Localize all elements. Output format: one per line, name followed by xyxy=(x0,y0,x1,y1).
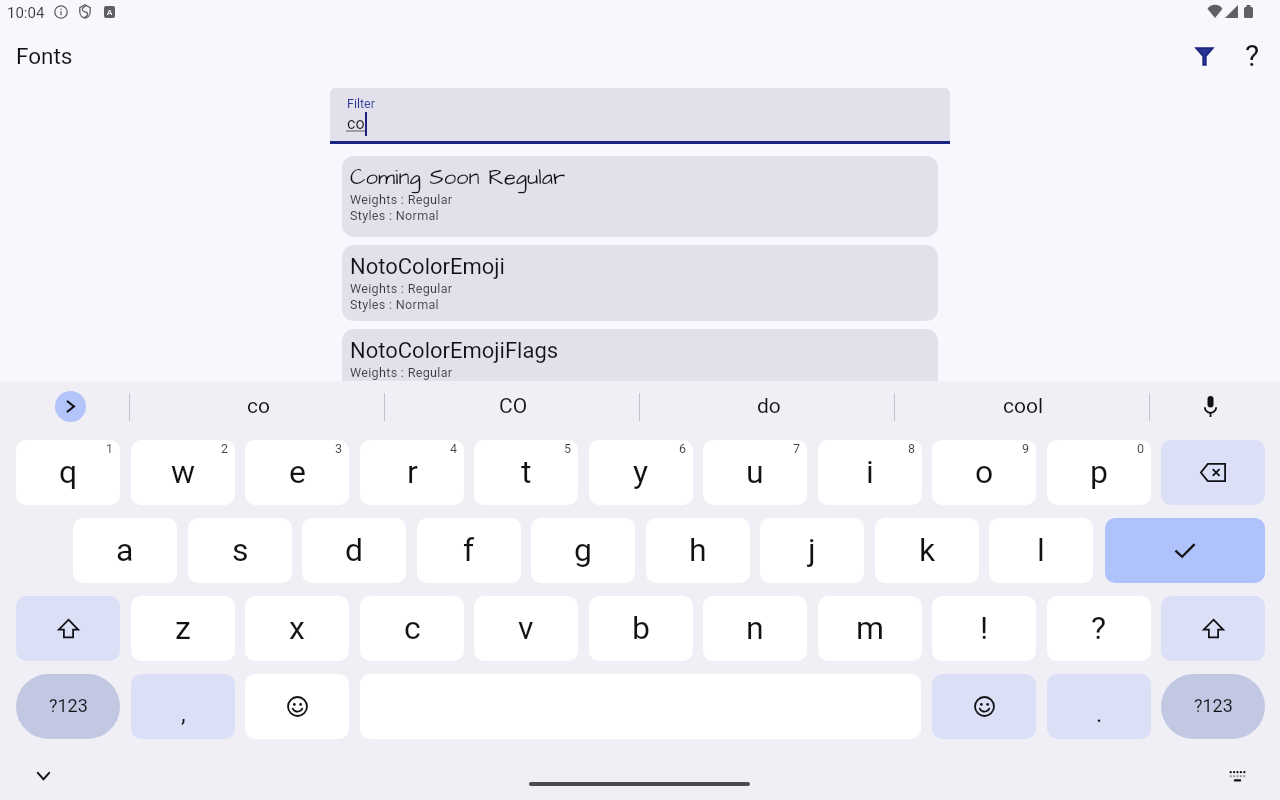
staticText: NotoColorEmoji xyxy=(350,254,505,280)
staticText: co xyxy=(347,114,365,133)
button[interactable]: Filter xyxy=(330,88,950,144)
button[interactable]: Coming Soon Regular xyxy=(342,156,938,237)
staticText: x xyxy=(289,609,305,647)
button[interactable]: o xyxy=(932,440,1036,505)
button[interactable]: g xyxy=(531,518,635,583)
button[interactable]: NotoColorEmoji xyxy=(342,245,938,321)
button[interactable]: do xyxy=(641,381,896,432)
other: Shift xyxy=(58,618,79,639)
button[interactable]: ? xyxy=(1047,596,1151,661)
staticText: NotoColorEmojiFlags xyxy=(350,338,559,364)
staticText: m xyxy=(856,609,885,647)
staticText: b xyxy=(632,609,650,647)
staticText: , xyxy=(181,700,186,728)
button[interactable]: l xyxy=(989,518,1093,583)
staticText: cool xyxy=(1003,394,1044,419)
button[interactable]: q xyxy=(16,440,120,505)
button[interactable]: ?123 xyxy=(1161,674,1265,739)
staticText: c xyxy=(404,609,421,647)
button[interactable]: Emoji xyxy=(932,674,1036,739)
button[interactable]: b xyxy=(589,596,693,661)
button[interactable]: Backspace xyxy=(1161,440,1265,505)
staticText: w xyxy=(171,453,196,491)
staticText: p xyxy=(1090,453,1108,491)
staticText: 9 xyxy=(1022,441,1030,456)
staticText: do xyxy=(757,394,781,419)
button[interactable]: i xyxy=(818,440,922,505)
staticText: ?123 xyxy=(49,695,88,716)
staticText: ! xyxy=(980,609,989,647)
button[interactable]: h xyxy=(646,518,750,583)
staticText: Fonts xyxy=(16,43,73,69)
button[interactable]: t xyxy=(474,440,578,505)
button[interactable]: Switch keyboard xyxy=(1221,760,1253,792)
button[interactable]: , xyxy=(131,674,235,739)
staticText: 7 xyxy=(793,441,801,456)
staticText: 0 xyxy=(1137,441,1145,456)
staticText: s xyxy=(232,531,249,569)
button[interactable]: f xyxy=(417,518,521,583)
staticText: 4 xyxy=(450,441,458,456)
button[interactable]: c xyxy=(360,596,464,661)
staticText: 6 xyxy=(679,441,687,456)
button[interactable]: v xyxy=(474,596,578,661)
staticText: ? xyxy=(1091,609,1107,647)
button[interactable]: CO xyxy=(386,381,641,432)
button[interactable]: r xyxy=(360,440,464,505)
other: Enter xyxy=(1173,542,1197,560)
staticText: Weights : Regular xyxy=(350,365,453,380)
button[interactable]: ! xyxy=(932,596,1036,661)
button[interactable]: k xyxy=(875,518,979,583)
staticText: Weights : Regular xyxy=(350,192,453,207)
button[interactable]: Filter xyxy=(1180,32,1228,80)
button[interactable]: More suggestions xyxy=(55,391,86,422)
button[interactable]: ?123 xyxy=(16,674,120,739)
button[interactable]: m xyxy=(818,596,922,661)
other: Emoji xyxy=(974,696,995,717)
button[interactable]: x xyxy=(245,596,349,661)
button[interactable]: y xyxy=(589,440,693,505)
button[interactable]: w xyxy=(131,440,235,505)
button[interactable]: Shift xyxy=(1161,596,1265,661)
staticText: 5 xyxy=(564,441,572,456)
button[interactable]: cool xyxy=(896,381,1151,432)
staticText: ? xyxy=(1245,38,1260,73)
staticText: f xyxy=(463,531,475,569)
staticText: Weights : Regular xyxy=(350,281,453,296)
button[interactable]: j xyxy=(760,518,864,583)
staticText: a xyxy=(116,531,134,569)
staticText: 1 xyxy=(106,441,114,456)
button[interactable]: d xyxy=(302,518,406,583)
staticText: o xyxy=(975,453,994,491)
staticText: z xyxy=(175,609,191,647)
button[interactable]: Hide keyboard xyxy=(27,760,59,792)
button[interactable]: n xyxy=(703,596,807,661)
other: Backspace xyxy=(1200,463,1226,482)
staticText: 3 xyxy=(335,441,343,456)
staticText: 2 xyxy=(221,441,229,456)
button[interactable]: u xyxy=(703,440,807,505)
button[interactable]: Enter xyxy=(1105,518,1265,583)
button[interactable]: Help xyxy=(1228,32,1276,80)
staticText: e xyxy=(289,453,306,491)
staticText: 8 xyxy=(908,441,916,456)
button[interactable]: z xyxy=(131,596,235,661)
staticText: l xyxy=(1037,531,1045,569)
button[interactable]: NotoColorEmojiFlags xyxy=(342,329,938,405)
staticText: i xyxy=(866,453,874,491)
staticText: Styles : Normal xyxy=(350,297,439,312)
button[interactable]: Shift xyxy=(16,596,120,661)
button[interactable]: p xyxy=(1047,440,1151,505)
button[interactable]: e xyxy=(245,440,349,505)
button[interactable]: co xyxy=(130,381,386,432)
button[interactable]: Emoji xyxy=(245,674,349,739)
staticText: y xyxy=(633,453,649,491)
button[interactable]: . xyxy=(1047,674,1151,739)
button[interactable]: s xyxy=(188,518,292,583)
staticText: r xyxy=(407,453,418,491)
staticText: . xyxy=(1096,700,1103,728)
button[interactable]: a xyxy=(73,518,177,583)
button[interactable]: Voice input xyxy=(1192,388,1228,424)
